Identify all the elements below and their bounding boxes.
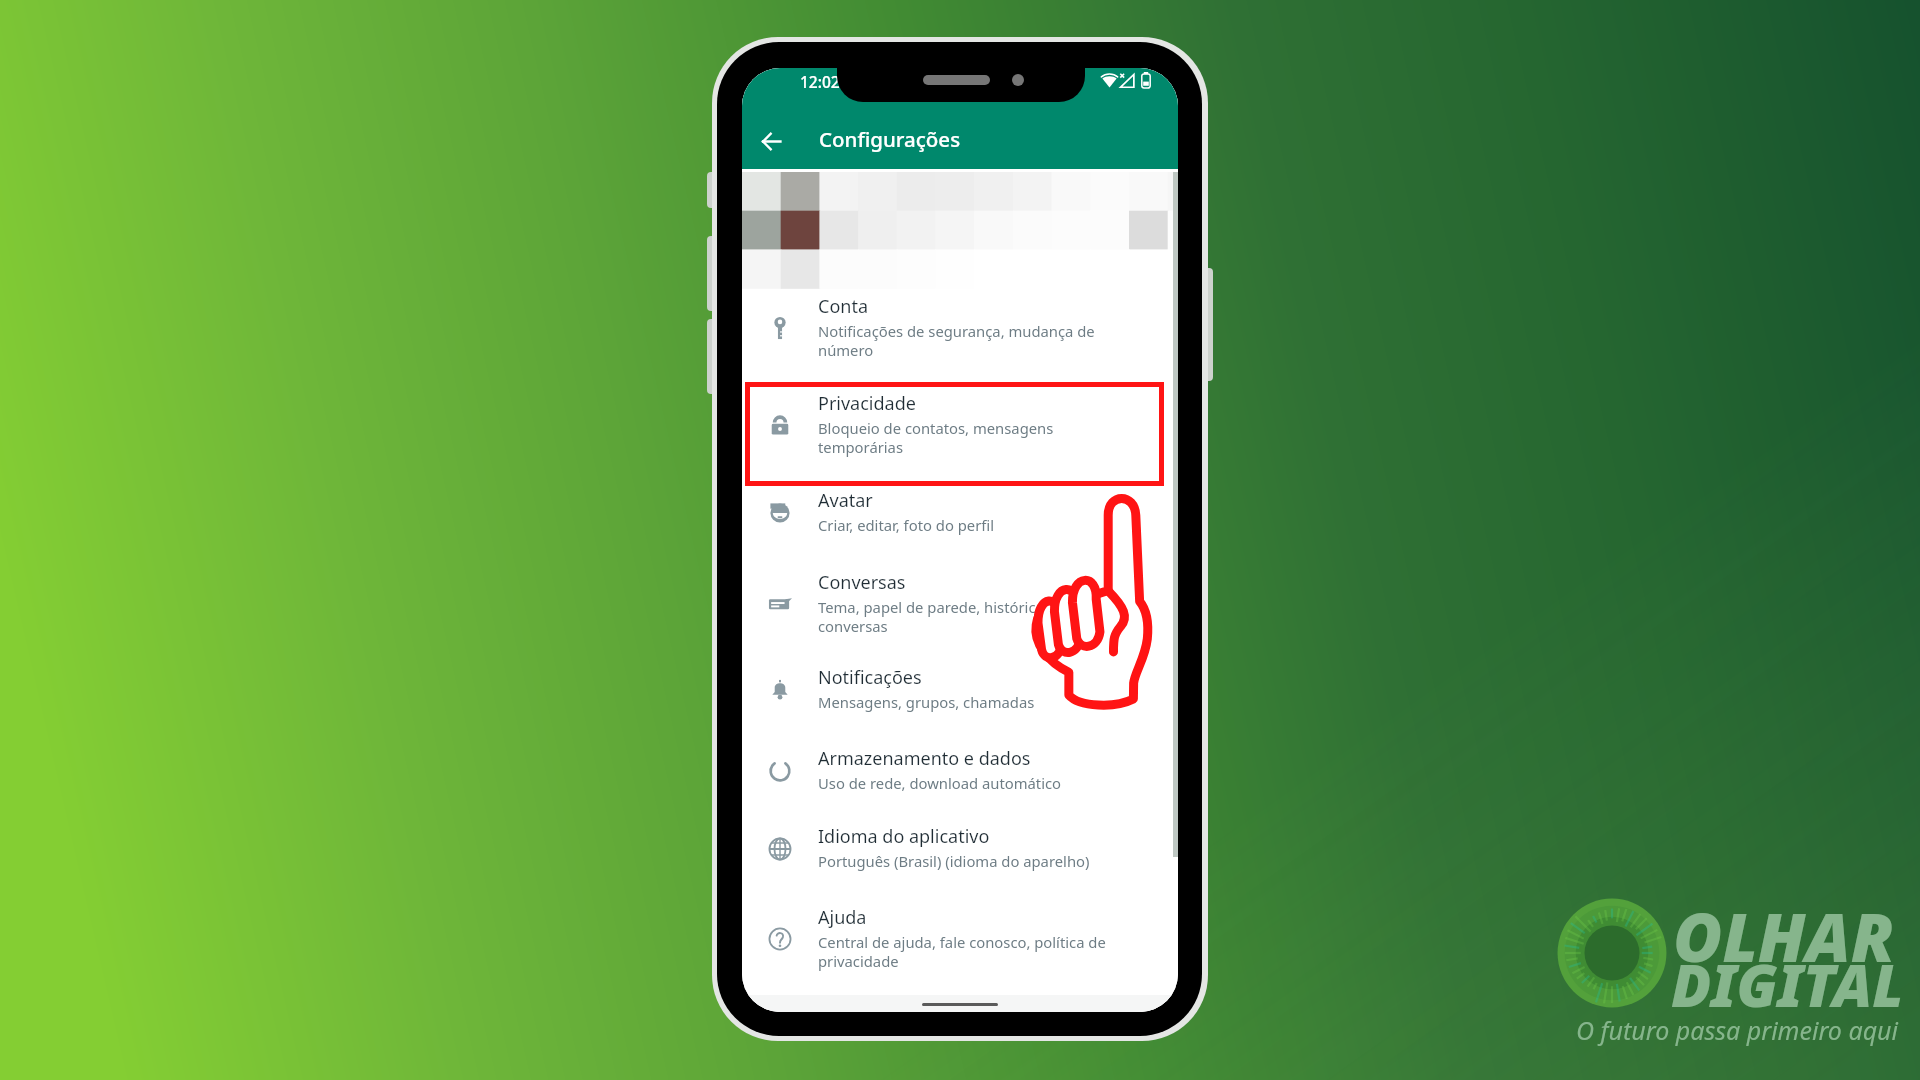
button[interactable]: Privacidade bbox=[742, 391, 1178, 488]
staticText: O futuro passa primeiro aqui bbox=[1576, 1013, 1899, 1047]
staticText: Armazenamento e dados bbox=[818, 746, 1031, 771]
button[interactable]: Voltar bbox=[747, 117, 795, 165]
staticText: Português (Brasil) (idioma do aparelho) bbox=[818, 851, 1090, 871]
staticText: Ajuda bbox=[818, 905, 867, 930]
staticText: 12:02 bbox=[800, 71, 840, 92]
staticText: Uso de rede, download automático bbox=[818, 773, 1062, 793]
button[interactable]: Notificações bbox=[742, 665, 1178, 746]
staticText: Bloqueio de contatos, mensagens temporár… bbox=[818, 418, 1054, 457]
staticText: Tema, papel de parede, histórico de conv… bbox=[818, 597, 1066, 636]
staticText: Notificações bbox=[818, 665, 922, 690]
staticText: Central de ajuda, fale conosco, política… bbox=[818, 932, 1106, 971]
staticText: Criar, editar, foto do perfil bbox=[818, 515, 994, 535]
staticText: Conversas bbox=[818, 570, 906, 595]
button[interactable]: Conversas bbox=[742, 570, 1178, 665]
button[interactable]: Ajuda bbox=[742, 905, 1178, 1000]
staticText: Idioma do aplicativo bbox=[818, 824, 990, 849]
button[interactable]: Idioma do aplicativo bbox=[742, 824, 1178, 905]
button[interactable]: Conta bbox=[742, 294, 1178, 391]
staticText: Avatar bbox=[818, 488, 873, 513]
staticText: DIGITAL bbox=[1671, 944, 1904, 1024]
staticText: Notificações de segurança, mudança de nú… bbox=[818, 321, 1095, 360]
staticText: Configurações bbox=[819, 125, 961, 153]
button[interactable]: Avatar bbox=[742, 488, 1178, 570]
staticText: OLHAR bbox=[1673, 890, 1895, 981]
staticText: Privacidade bbox=[818, 391, 916, 416]
staticText: Conta bbox=[818, 294, 868, 319]
staticText: Mensagens, grupos, chamadas bbox=[818, 692, 1035, 712]
button[interactable]: Armazenamento e dados bbox=[742, 746, 1178, 824]
